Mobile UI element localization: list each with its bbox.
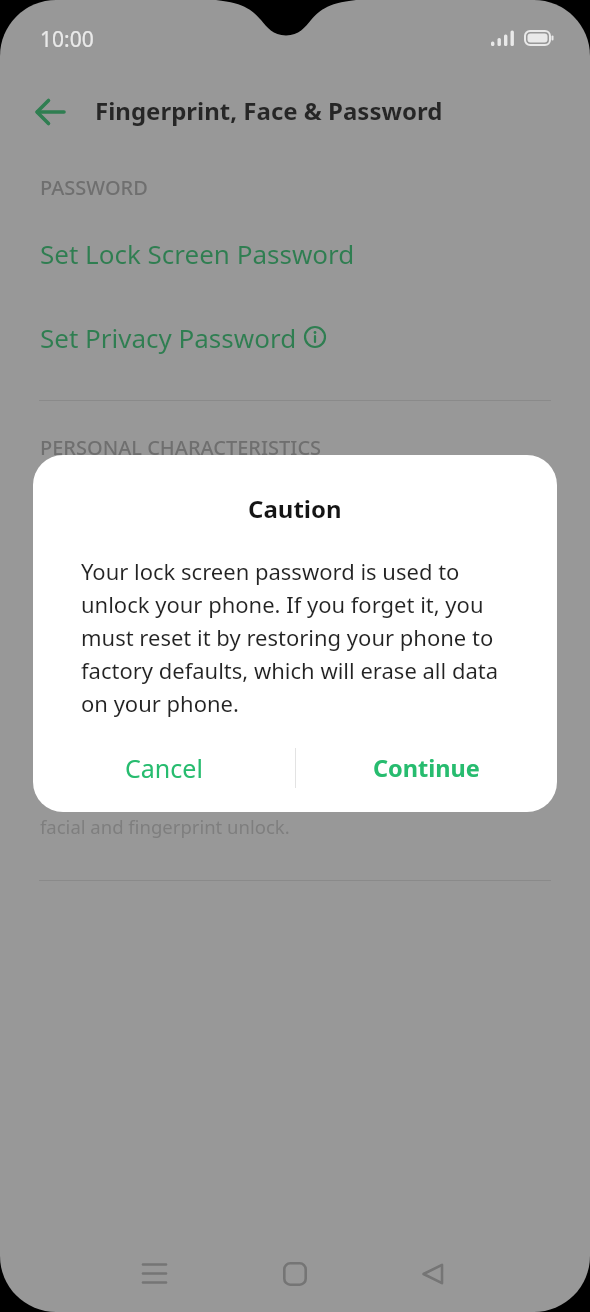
staticText: PASSWORD bbox=[40, 174, 148, 200]
button[interactable] bbox=[283, 1262, 307, 1286]
button[interactable]: Continue bbox=[295, 743, 557, 793]
staticText: facial and fingerprint unlock. bbox=[40, 814, 290, 839]
button[interactable] bbox=[421, 1263, 444, 1285]
button[interactable] bbox=[35, 97, 66, 127]
staticText: Fingerprint, Face & Password bbox=[95, 94, 443, 127]
staticText: 10:00 bbox=[40, 25, 94, 54]
staticText: Your lock screen password is used to unl… bbox=[81, 556, 513, 718]
staticText: Set Privacy Password bbox=[40, 320, 297, 354]
button[interactable] bbox=[143, 1263, 166, 1283]
button[interactable]: Set Privacy Password bbox=[40, 320, 340, 354]
button[interactable]: Cancel bbox=[33, 743, 295, 793]
staticText: Continue bbox=[373, 752, 480, 784]
staticText: Cancel bbox=[125, 751, 203, 785]
staticText: PERSONAL CHARACTERISTICS bbox=[40, 434, 322, 460]
button[interactable]: Set Lock Screen Password bbox=[40, 236, 460, 270]
staticText: Set Lock Screen Password bbox=[40, 236, 355, 270]
staticText: Caution bbox=[248, 492, 342, 525]
